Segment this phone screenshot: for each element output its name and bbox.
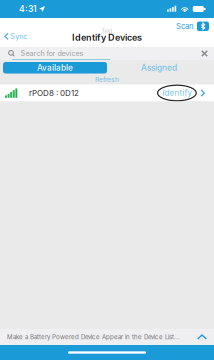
staticText: 4:31: [19, 4, 37, 14]
staticText: Make a Battery Powered Device Appear in …: [7, 333, 180, 341]
staticText: Search for devices: [20, 49, 83, 58]
staticText: Identify Devices: [72, 32, 142, 43]
staticText: Test: [101, 28, 112, 35]
staticText: Available: [37, 63, 73, 73]
button[interactable]: rPOD8 : 0D12: [0, 84, 214, 101]
staticText: Scan: [176, 22, 194, 31]
staticText: Assigned: [141, 63, 177, 73]
staticText: Sync: [10, 32, 27, 41]
button[interactable]: Clear search: [199, 48, 210, 59]
staticText: rPOD8 : 0D12: [29, 88, 79, 98]
button[interactable]: Assigned: [107, 62, 211, 73]
button[interactable]: Scan: [173, 20, 212, 32]
staticText: Identify: [162, 88, 191, 98]
button[interactable]: Sync: [1, 30, 30, 43]
staticText: Refresh: [95, 75, 119, 84]
button[interactable]: Make a Battery Powered Device Appear in …: [0, 329, 214, 345]
button[interactable]: Refresh: [95, 74, 119, 84]
button[interactable]: Available: [3, 62, 107, 73]
